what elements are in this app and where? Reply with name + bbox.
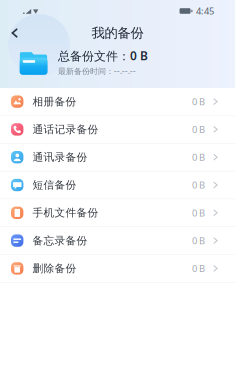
staticText: 手机文件备份 <box>32 206 98 219</box>
staticText: 总备份文件：0 B <box>58 48 148 64</box>
button[interactable]: 删除备份 <box>0 255 235 283</box>
staticText: 0 B <box>192 234 205 247</box>
staticText: 备忘录备份 <box>32 234 87 247</box>
button[interactable]: 短信备份 <box>0 171 235 199</box>
staticText: 0 B <box>192 207 205 219</box>
button[interactable]: 通讯录备份 <box>0 144 235 171</box>
staticText: 通讯录备份 <box>32 151 87 164</box>
button[interactable]: 备忘录备份 <box>0 227 235 255</box>
staticText: 0 B <box>192 262 205 275</box>
staticText: 最新备份时间：--.--.-- <box>58 66 136 76</box>
staticText: 通话记录备份 <box>32 123 98 136</box>
staticText: 0 B <box>192 123 205 136</box>
staticText: 0 B <box>192 179 205 191</box>
button[interactable]: Back <box>6 23 24 43</box>
button[interactable]: 通话记录备份 <box>0 116 235 144</box>
staticText: 相册备份 <box>32 95 76 108</box>
staticText: 我的备份 <box>91 25 143 41</box>
staticText: 4:45 <box>196 5 214 17</box>
staticText: 删除备份 <box>32 262 76 275</box>
staticText: 0 B <box>192 95 205 108</box>
staticText: 短信备份 <box>32 178 76 191</box>
staticText: 0 B <box>192 151 205 163</box>
button[interactable]: 手机文件备份 <box>0 199 235 227</box>
button[interactable]: 相册备份 <box>0 88 235 116</box>
